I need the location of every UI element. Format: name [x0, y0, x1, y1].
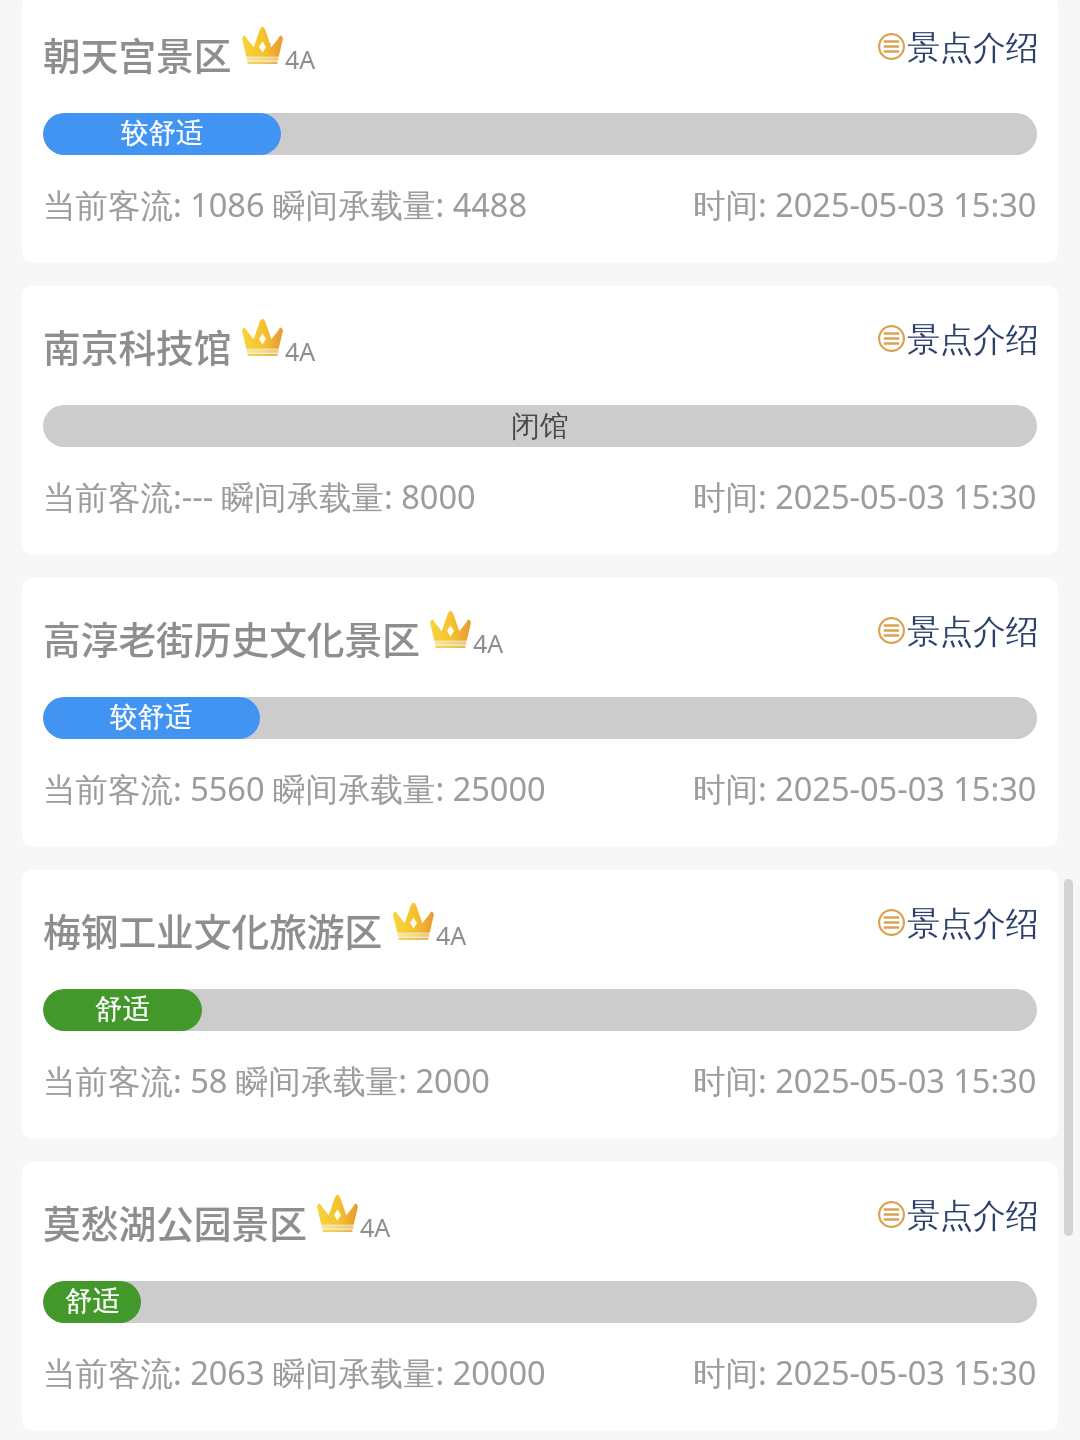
staticText: 舒适: [65, 1284, 120, 1319]
staticText: 4A: [360, 1210, 391, 1244]
staticText: 闭馆: [511, 408, 569, 445]
staticText: 当前客流: 5560 瞬间承载量: 25000: [43, 766, 546, 810]
button[interactable]: 莫愁湖公园景区: [22, 1162, 1058, 1431]
staticText: 当前客流: 58 瞬间承载量: 2000: [43, 1058, 490, 1102]
staticText: 景点介绍: [907, 27, 1039, 69]
button[interactable]: 景点介绍: [878, 611, 1039, 653]
other: 景点介绍: [878, 325, 905, 352]
staticText: 景点介绍: [907, 611, 1039, 653]
button[interactable]: 高淳老街历史文化景区: [22, 578, 1058, 847]
button[interactable]: 景点介绍: [878, 1195, 1039, 1237]
staticText: 景点介绍: [907, 319, 1039, 361]
button[interactable]: 景点介绍: [878, 319, 1039, 361]
staticText: 景点介绍: [907, 1195, 1039, 1237]
staticText: 4A: [285, 42, 316, 76]
staticText: 较舒适: [110, 700, 193, 735]
button[interactable]: 景点介绍: [878, 27, 1039, 69]
button[interactable]: 景点介绍: [878, 903, 1039, 945]
staticText: 较舒适: [121, 116, 204, 151]
staticText: 4A: [473, 626, 504, 660]
staticText: 当前客流: 2063 瞬间承载量: 20000: [43, 1350, 546, 1394]
button[interactable]: 梅钢工业文化旅游区: [22, 870, 1058, 1139]
other: 景点介绍: [878, 33, 905, 60]
staticText: 景点介绍: [907, 903, 1039, 945]
other: 景点介绍: [878, 1201, 905, 1228]
staticText: 时间: 2025-05-03 15:30: [693, 766, 1037, 810]
staticText: 梅钢工业文化旅游区: [43, 902, 383, 957]
staticText: 4A: [436, 918, 467, 952]
staticText: 时间: 2025-05-03 15:30: [693, 1350, 1037, 1394]
staticText: 当前客流:--- 瞬间承载量: 8000: [43, 474, 476, 518]
other: 景点介绍: [878, 909, 905, 936]
staticText: 时间: 2025-05-03 15:30: [693, 1058, 1037, 1102]
other: 景点介绍: [878, 617, 905, 644]
staticText: 朝天宫景区: [43, 26, 232, 81]
staticText: 舒适: [95, 992, 150, 1027]
staticText: 当前客流: 1086 瞬间承载量: 4488: [43, 182, 527, 226]
staticText: 南京科技馆: [43, 318, 232, 373]
button[interactable]: 朝天宫景区: [22, 0, 1058, 263]
staticText: 高淳老街历史文化景区: [43, 610, 420, 665]
staticText: 莫愁湖公园景区: [43, 1194, 307, 1249]
staticText: 4A: [285, 334, 316, 368]
staticText: 时间: 2025-05-03 15:30: [693, 182, 1037, 226]
staticText: 时间: 2025-05-03 15:30: [693, 474, 1037, 518]
button[interactable]: 南京科技馆: [22, 286, 1058, 555]
